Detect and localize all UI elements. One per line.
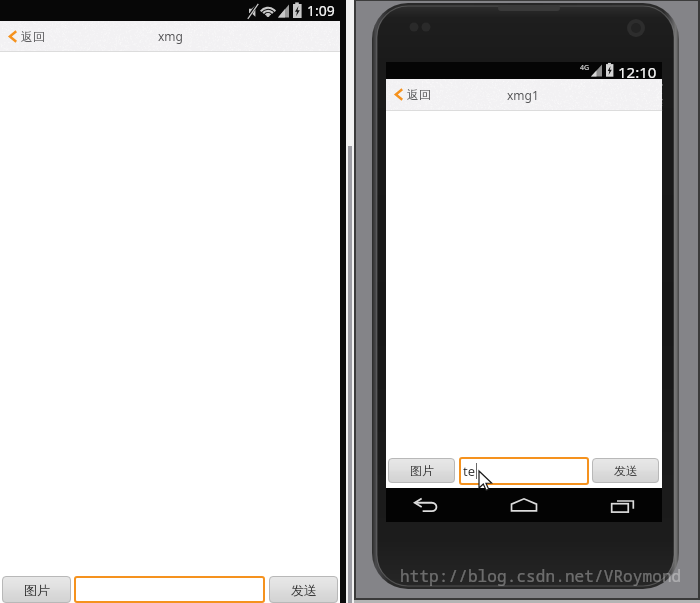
button[interactable]: Home (502, 489, 546, 521)
staticText: 图片 (410, 463, 434, 478)
button[interactable]: 返回 (7, 21, 45, 51)
staticText: 12:10 (618, 62, 657, 79)
staticText: 返回 (407, 87, 431, 102)
button[interactable]: te (459, 457, 589, 485)
button[interactable]: 发送 (592, 458, 659, 483)
button[interactable]: 发送 (269, 576, 338, 603)
button[interactable]: Recents (600, 489, 644, 521)
button[interactable]: 返回 (393, 79, 431, 110)
staticText: 发送 (614, 463, 638, 478)
staticText: 4G (580, 63, 590, 73)
staticText: 返回 (21, 29, 45, 44)
button[interactable]: Back (404, 489, 448, 521)
staticText: te (463, 462, 476, 480)
button[interactable]: 图片 (2, 576, 71, 603)
staticText: 发送 (291, 582, 317, 598)
staticText: 1:09 (307, 1, 335, 20)
button[interactable]: 图片 (388, 458, 455, 483)
button[interactable] (74, 576, 265, 603)
staticText: xmg (158, 28, 183, 44)
staticText: xmg1 (507, 87, 539, 103)
staticText: http://blog.csdn.net/VRoymond (400, 565, 682, 587)
staticText: 图片 (24, 582, 50, 598)
